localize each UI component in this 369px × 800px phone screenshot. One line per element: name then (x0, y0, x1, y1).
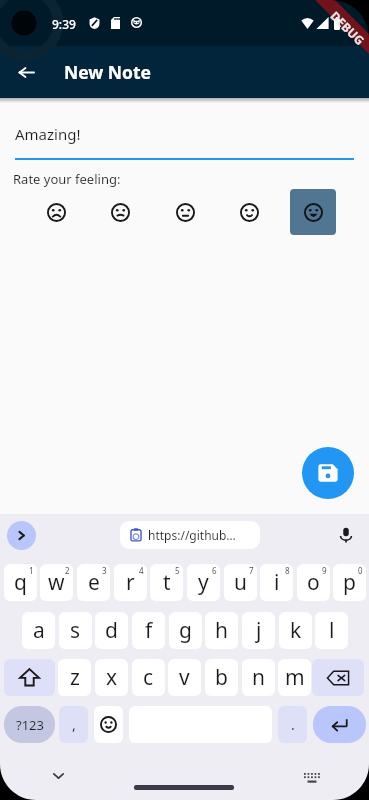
button[interactable]: Feeling 3 (162, 189, 208, 235)
button[interactable]: Back (6, 52, 46, 92)
button[interactable]: a (22, 612, 55, 649)
staticText: d (105, 616, 118, 645)
staticText: l (329, 616, 335, 645)
button[interactable]: n (242, 659, 275, 696)
staticText: s (70, 616, 81, 645)
staticText: g (179, 616, 192, 645)
staticText: Rate your feeling: (13, 170, 121, 188)
staticText: ?123 (16, 716, 44, 734)
button[interactable]: More suggestions (7, 521, 36, 550)
staticText: Amazing! (15, 124, 81, 144)
staticText: 9 (322, 565, 327, 576)
button[interactable]: Save note (302, 447, 354, 499)
staticText: x (106, 663, 118, 692)
button[interactable]: Feeling 1 (33, 189, 79, 235)
staticText: m (285, 663, 305, 692)
staticText: 6 (212, 565, 217, 576)
staticText: o (307, 568, 320, 597)
staticText: v (179, 663, 190, 692)
button[interactable]: x (95, 659, 128, 696)
button[interactable]: c (132, 659, 165, 696)
button[interactable]: d (95, 612, 128, 649)
button[interactable]: Keyboard settings (298, 764, 326, 792)
button[interactable]: Feeling 2 (97, 189, 143, 235)
button[interactable]: https://github… (120, 521, 260, 549)
staticText: e (88, 568, 100, 597)
staticText: i (274, 568, 280, 597)
button[interactable]: e (77, 564, 110, 601)
staticText: 0 (358, 565, 363, 576)
button[interactable]: . (278, 706, 307, 743)
staticText: 3 (102, 565, 107, 576)
staticText: . (291, 715, 295, 734)
staticText: q (14, 568, 27, 597)
button[interactable]: j (242, 612, 275, 649)
staticText: j (256, 616, 262, 645)
button[interactable]: t (150, 564, 183, 601)
staticText: p (343, 568, 356, 597)
button[interactable]: Hide keyboard (44, 762, 72, 790)
staticText: c (143, 663, 154, 692)
button[interactable]: Shift (4, 659, 55, 696)
button[interactable]: r (114, 564, 147, 601)
staticText: r (126, 568, 135, 597)
staticText: 1 (29, 565, 34, 576)
staticText: z (70, 663, 80, 692)
staticText: 7 (249, 565, 254, 576)
button[interactable]: p (333, 564, 366, 601)
button[interactable]: q (4, 564, 37, 601)
button[interactable]: k (279, 612, 312, 649)
button[interactable]: Voice input (333, 522, 359, 548)
button[interactable]: f (132, 612, 165, 649)
staticText: n (252, 663, 265, 692)
button[interactable]: b (205, 659, 238, 696)
staticText: 9:39 (52, 16, 76, 32)
button[interactable]: ?123 (4, 706, 55, 743)
staticText: b (215, 663, 228, 692)
button[interactable]: w (40, 564, 73, 601)
staticText: , (72, 715, 76, 734)
staticText: New Note (64, 60, 152, 84)
button[interactable]: Feeling 5 (290, 189, 336, 235)
button[interactable]: h (205, 612, 238, 649)
staticText: 8 (285, 565, 290, 576)
staticText: https://github… (148, 527, 236, 543)
button[interactable]: z (58, 659, 91, 696)
button[interactable]: Emoji (94, 706, 123, 743)
staticText: 5 (175, 565, 180, 576)
button[interactable]: o (297, 564, 330, 601)
button[interactable]: g (169, 612, 202, 649)
button[interactable]: l (315, 612, 348, 649)
staticText: DEBUG (327, 7, 368, 48)
staticText: u (234, 568, 247, 597)
button[interactable]: Enter (313, 706, 366, 743)
staticText: t (163, 568, 171, 597)
staticText: w (48, 568, 65, 597)
staticText: y (198, 568, 209, 597)
button[interactable]: i (260, 564, 293, 601)
button[interactable]: s (59, 612, 92, 649)
staticText: 2 (65, 565, 70, 576)
button[interactable]: Backspace (312, 659, 364, 696)
button[interactable]: Feeling 4 (226, 189, 272, 235)
staticText: h (215, 616, 228, 645)
button[interactable]: m (278, 659, 311, 696)
staticText: f (145, 616, 153, 645)
button[interactable]: , (59, 706, 88, 743)
button[interactable]: v (168, 659, 201, 696)
staticText: 4 (139, 565, 144, 576)
staticText: a (33, 616, 45, 645)
button[interactable]: y (187, 564, 220, 601)
button[interactable]: u (224, 564, 257, 601)
staticText: k (290, 616, 302, 645)
